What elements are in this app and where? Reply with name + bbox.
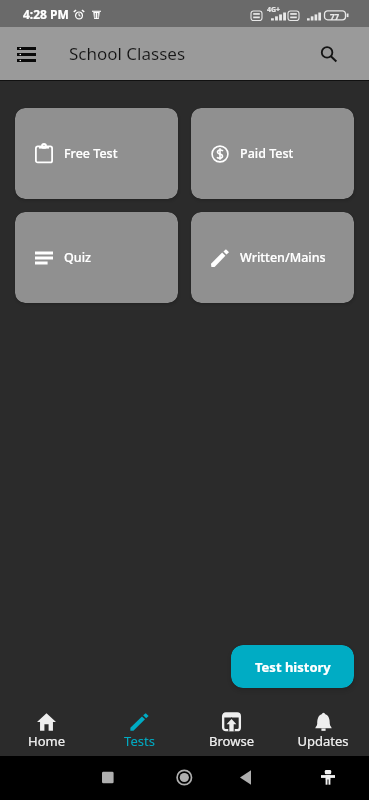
button[interactable]: Search: [307, 32, 351, 76]
button[interactable]: Paid Test: [191, 108, 354, 199]
button[interactable]: Tests: [93, 700, 185, 756]
button[interactable]: Recents: [86, 762, 130, 800]
staticText: 77: [330, 11, 340, 22]
button[interactable]: Free Test: [15, 108, 178, 199]
button[interactable]: Home: [0, 700, 93, 756]
staticText: Updates: [297, 732, 349, 750]
staticText: Quiz: [64, 249, 91, 266]
button[interactable]: Menu: [4, 32, 48, 76]
staticText: Written/Mains: [240, 249, 326, 266]
staticText: 4G+: [267, 5, 281, 15]
staticText: School Classes: [69, 42, 186, 65]
button[interactable]: Home: [163, 762, 207, 800]
staticText: Home: [28, 732, 65, 750]
button[interactable]: Updates: [277, 700, 369, 756]
staticText: Paid Test: [240, 145, 294, 162]
button[interactable]: Test history: [231, 645, 354, 688]
staticText: 4:28 PM: [23, 6, 69, 22]
staticText: Browse: [209, 732, 254, 750]
button[interactable]: Back: [224, 762, 268, 800]
button[interactable]: Accessibility: [306, 762, 350, 800]
button[interactable]: Browse: [185, 700, 277, 756]
button[interactable]: Quiz: [15, 212, 178, 303]
staticText: Tests: [124, 732, 155, 750]
staticText: Free Test: [64, 145, 118, 162]
button[interactable]: Written/Mains: [191, 212, 354, 303]
staticText: Test history: [255, 658, 331, 676]
